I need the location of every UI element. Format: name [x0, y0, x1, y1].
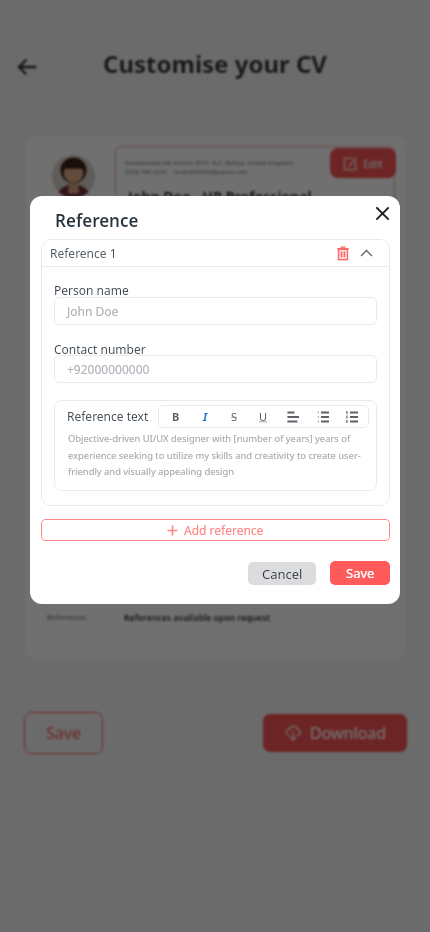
- button[interactable]: Cancel: [248, 562, 316, 585]
- staticText: Reference 1: [50, 245, 117, 261]
- button[interactable]: Save: [330, 561, 390, 585]
- staticText: B: [172, 409, 180, 424]
- button[interactable]: Underline: [252, 405, 275, 428]
- button[interactable]: Bulleted list: [311, 405, 334, 428]
- button[interactable]: Italic: [194, 405, 217, 428]
- staticText: Customise your CV: [0, 47, 430, 80]
- staticText: Edit: [363, 156, 383, 171]
- staticText: +92000000000: [67, 361, 150, 377]
- button[interactable]: Edit: [330, 148, 396, 178]
- staticText: Objective-driven UI/UX designer with [nu…: [68, 432, 368, 478]
- staticText: U: [259, 409, 268, 424]
- staticText: References: [47, 613, 86, 623]
- staticText: S: [231, 409, 238, 424]
- staticText: Add reference: [184, 522, 264, 538]
- button[interactable]: Delete reference: [330, 239, 356, 266]
- staticText: Randalstown Rd, Antrim, BT41 4LX, Belfas…: [125, 159, 294, 167]
- button[interactable]: Collapse: [353, 239, 379, 266]
- staticText: Person name: [54, 282, 129, 298]
- staticText: Download: [310, 722, 387, 744]
- button[interactable]: +92000000000: [54, 355, 377, 383]
- button[interactable]: John Doe: [54, 297, 377, 325]
- staticText: (203) 706-2234 chram840202@yahoo.com: [125, 168, 248, 176]
- button[interactable]: Back: [11, 52, 43, 84]
- staticText: References available upon request: [124, 612, 271, 624]
- button[interactable]: Save: [24, 712, 103, 754]
- button[interactable]: Align: [281, 405, 304, 428]
- button[interactable]: Add reference: [41, 519, 390, 541]
- button[interactable]: Download: [263, 714, 407, 752]
- button[interactable]: Reference 1: [41, 239, 390, 266]
- staticText: Reference: [55, 209, 139, 232]
- button[interactable]: Strikethrough: [223, 405, 246, 428]
- staticText: Save: [346, 564, 375, 582]
- staticText: John Doe: [67, 303, 119, 319]
- staticText: Cancel: [262, 565, 303, 583]
- staticText: Save: [46, 722, 81, 744]
- staticText: Reference text: [67, 408, 149, 424]
- button[interactable]: Close: [367, 198, 398, 229]
- button[interactable]: Bold: [164, 405, 187, 428]
- staticText: I: [203, 409, 208, 424]
- button[interactable]: Numbered list: [340, 405, 363, 428]
- staticText: John Doe - HR Professional: [128, 187, 312, 206]
- staticText: Contact number: [54, 341, 146, 357]
